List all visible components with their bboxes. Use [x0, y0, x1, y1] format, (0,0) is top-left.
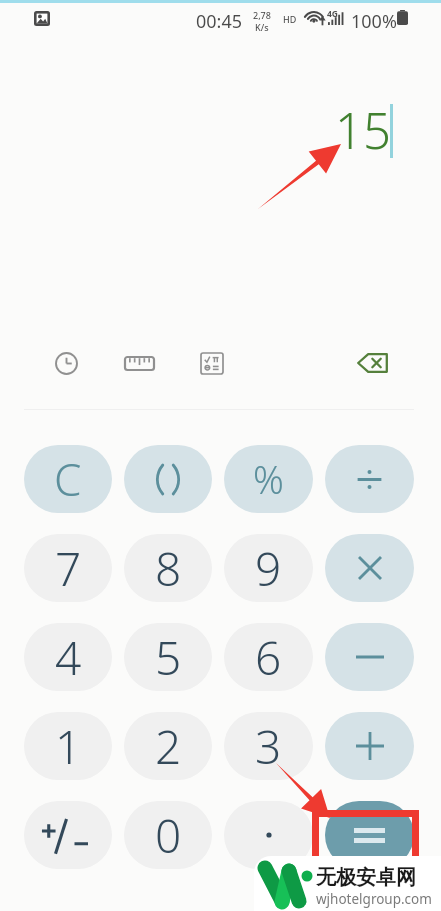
button[interactable]: 2 [124, 712, 212, 780]
staticText: 3 [255, 715, 282, 778]
staticText: K/s [255, 21, 269, 33]
button[interactable]: History [44, 341, 88, 385]
button[interactable] [325, 445, 414, 513]
button[interactable]: 0 [124, 801, 212, 869]
staticText: 无极安卓网 [316, 865, 416, 890]
button[interactable] [124, 445, 212, 513]
button[interactable]: 9 [224, 534, 313, 602]
staticText: 1 [55, 715, 82, 778]
staticText: wjhotelgroup.com [316, 890, 432, 908]
staticText: 8 [155, 537, 182, 600]
button[interactable]: 6 [224, 623, 313, 691]
staticText: 7 [55, 537, 82, 600]
button[interactable]: Scientific [190, 341, 234, 385]
staticText: 6 [255, 626, 282, 689]
button[interactable]: 5 [124, 623, 212, 691]
button[interactable]: 8 [124, 534, 212, 602]
staticText: 2 [155, 715, 182, 778]
button[interactable] [24, 801, 112, 869]
staticText: % [253, 453, 284, 505]
button[interactable] [325, 801, 414, 869]
button[interactable] [325, 623, 414, 691]
staticText: 0 [155, 804, 182, 867]
button[interactable] [224, 801, 313, 869]
button[interactable] [325, 712, 414, 780]
button[interactable]: 3 [224, 712, 313, 780]
button[interactable]: C [24, 445, 112, 513]
button[interactable]: 4 [24, 623, 112, 691]
button[interactable]: 7 [24, 534, 112, 602]
staticText: 2,78 [253, 9, 271, 21]
staticText: 00:45 [196, 9, 243, 34]
staticText: 9 [255, 537, 282, 600]
button[interactable]: Unit converter [117, 341, 161, 385]
staticText: 4 [55, 626, 82, 689]
button[interactable] [325, 534, 414, 602]
staticText: 100% [351, 9, 397, 34]
button[interactable]: 1 [24, 712, 112, 780]
button[interactable]: % [224, 445, 313, 513]
staticText: C [54, 449, 82, 509]
staticText: HD [283, 13, 297, 25]
staticText: 4G [327, 8, 339, 20]
button[interactable]: Delete [348, 339, 396, 387]
staticText: 5 [155, 626, 182, 689]
staticText: 15 [335, 97, 391, 164]
